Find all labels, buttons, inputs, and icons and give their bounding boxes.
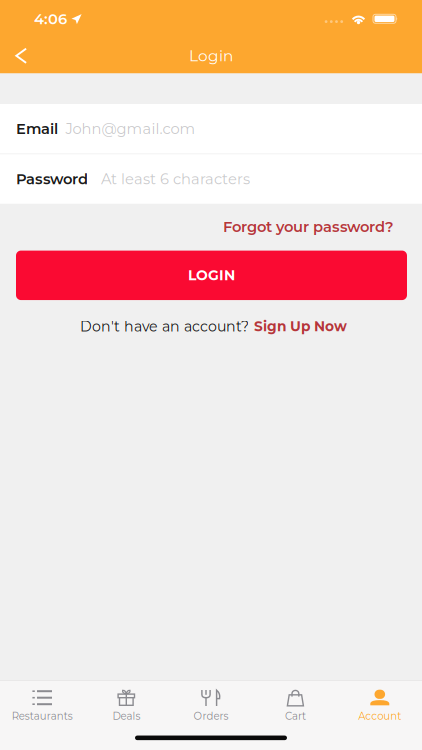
button[interactable]: Orders: [169, 681, 253, 726]
staticText: Email: [16, 120, 58, 138]
staticText: Don't have an account?: [80, 318, 249, 335]
button[interactable]: LOGIN: [16, 251, 407, 300]
button[interactable]: Forgot your password?: [223, 211, 422, 243]
staticText: LOGIN: [188, 267, 235, 284]
button[interactable]: Sign Up Now: [249, 314, 347, 339]
staticText: 4:06: [34, 10, 67, 28]
staticText: Login: [189, 46, 233, 65]
button[interactable]: Cart: [253, 681, 338, 726]
staticText: Password: [16, 170, 88, 188]
button[interactable]: Back: [0, 40, 43, 72]
staticText: Cart: [285, 710, 306, 722]
staticText: At least 6 characters: [101, 170, 250, 188]
staticText: Sign Up Now: [254, 318, 347, 335]
staticText: Orders: [193, 710, 228, 722]
staticText: Restaurants: [12, 710, 73, 722]
button[interactable]: Account: [338, 681, 422, 726]
staticText: Account: [358, 710, 401, 722]
staticText: Forgot your password?: [223, 218, 394, 236]
button[interactable]: Deals: [84, 681, 169, 726]
button[interactable]: Restaurants: [0, 681, 84, 726]
staticText: Deals: [113, 710, 141, 722]
staticText: John@gmail.com: [65, 120, 195, 138]
